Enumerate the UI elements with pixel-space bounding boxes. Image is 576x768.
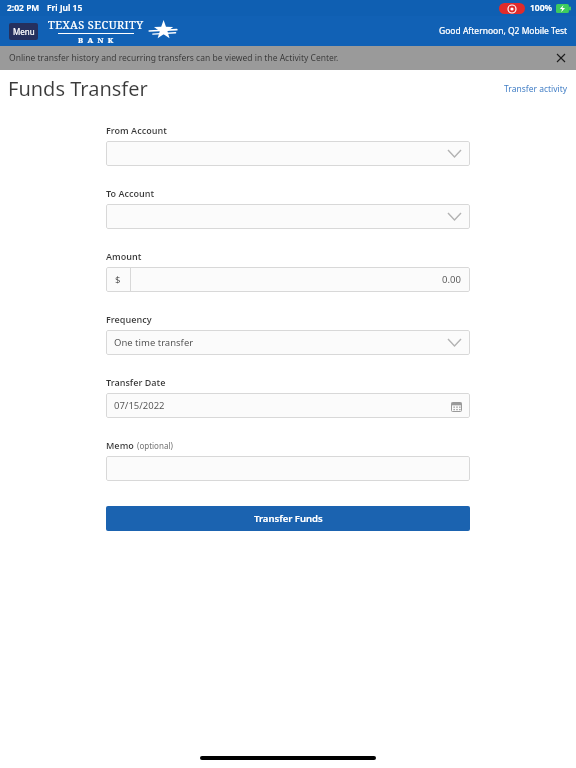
staticText: Memo	[106, 439, 134, 451]
button[interactable]: $	[106, 267, 470, 292]
staticText: Funds Transfer	[8, 75, 148, 102]
staticText: 07/15/2022	[114, 399, 165, 412]
staticText: Frequency	[106, 313, 152, 325]
staticText: 0.00	[442, 273, 461, 286]
staticText: Transfer activity	[504, 83, 568, 95]
button[interactable]: Transfer activity	[502, 81, 570, 97]
button[interactable]: Transfer Funds	[106, 506, 470, 531]
staticText: Good Afternoon, Q2 Mobile Test	[439, 25, 568, 37]
button[interactable]: One time transfer	[106, 330, 470, 355]
button[interactable]: Choose date	[449, 399, 463, 413]
staticText: One time transfer	[114, 336, 194, 349]
staticText: Transfer Date	[106, 376, 166, 388]
button[interactable]: Menu	[9, 23, 38, 40]
staticText: Menu	[13, 26, 35, 37]
button[interactable]: Dismiss	[552, 49, 570, 67]
button[interactable]: 07/15/2022	[106, 393, 470, 418]
staticText: (optional)	[137, 440, 173, 451]
staticText: 2:02 PM	[7, 2, 40, 14]
staticText: B A N K	[78, 35, 115, 45]
button[interactable]: Memo	[106, 456, 470, 481]
staticText: $	[115, 273, 121, 286]
staticText: Online transfer history and recurring tr…	[9, 52, 339, 64]
staticText: 100%	[530, 2, 553, 14]
button[interactable]: Select account	[106, 204, 470, 229]
staticText: Transfer Funds	[254, 512, 323, 525]
staticText: To Account	[106, 187, 155, 199]
button[interactable]: Select account	[106, 141, 470, 166]
staticText: TEXAS SECURITY	[48, 17, 144, 32]
staticText: Fri Jul 15	[47, 2, 83, 14]
staticText: From Account	[106, 124, 167, 136]
staticText: Amount	[106, 250, 142, 262]
